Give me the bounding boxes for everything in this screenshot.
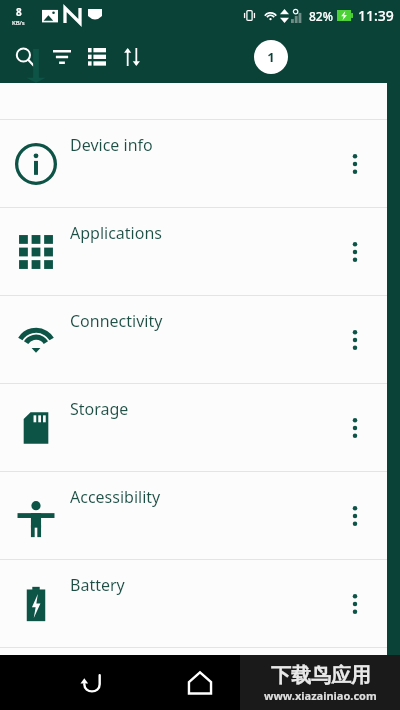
button[interactable]: Battery [0,560,400,647]
staticText: 8 [16,5,22,19]
button[interactable]: More options for Applications [340,237,370,267]
staticText: 11:39 [358,6,394,25]
button[interactable]: Connectivity [0,296,400,383]
button[interactable]: List view [79,39,115,75]
button[interactable]: More options for Storage [340,413,370,443]
button[interactable]: Applications [0,208,400,295]
button[interactable]: Filter [44,39,80,75]
button[interactable]: Home [180,663,220,703]
button[interactable]: More options for Device info [340,149,370,179]
staticText: www.xiazainiao.com [264,688,377,703]
staticText: 1 [267,48,275,66]
staticText: Device info [70,134,153,156]
staticText: 下载鸟应用 [271,663,371,688]
button[interactable]: More options for Accessibility [340,501,370,531]
staticText: Accessibility [70,486,161,508]
button[interactable]: Search [7,39,43,75]
staticText: Storage [70,398,129,420]
button[interactable]: 1 [254,40,288,74]
staticText: Applications [70,222,162,244]
button[interactable]: Back [72,663,112,703]
button[interactable]: Accessibility [0,472,400,559]
button[interactable]: Storage [0,384,400,471]
button[interactable]: Device info [0,120,400,207]
button[interactable] [0,83,400,119]
staticText: 82% [309,8,333,24]
button[interactable]: Sort [114,39,150,75]
button[interactable]: More options for Battery [340,589,370,619]
staticText: Connectivity [70,310,163,332]
button[interactable]: More options for Connectivity [340,325,370,355]
staticText: KB/s [12,19,25,27]
staticText: Battery [70,574,125,596]
